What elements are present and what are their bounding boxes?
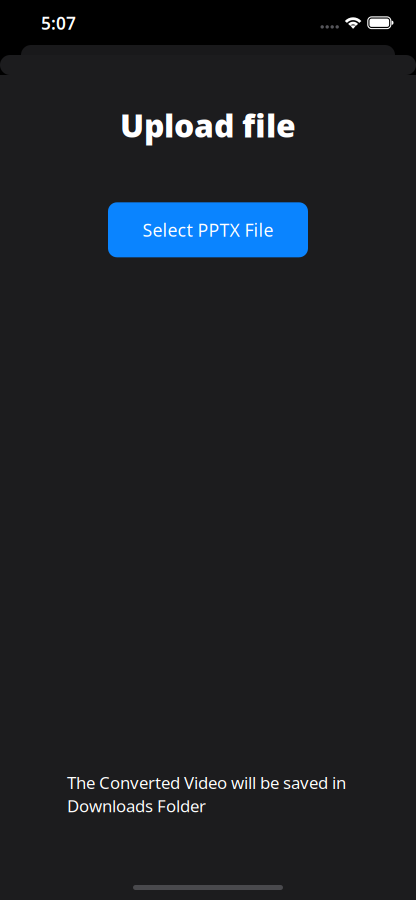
staticText: The Converted Video will be saved in Dow…: [67, 771, 346, 817]
staticText: Select PPTX File: [142, 218, 273, 241]
staticText: Upload file: [120, 104, 296, 146]
staticText: 5:07: [41, 11, 76, 34]
button[interactable]: Select PPTX File: [108, 202, 308, 257]
